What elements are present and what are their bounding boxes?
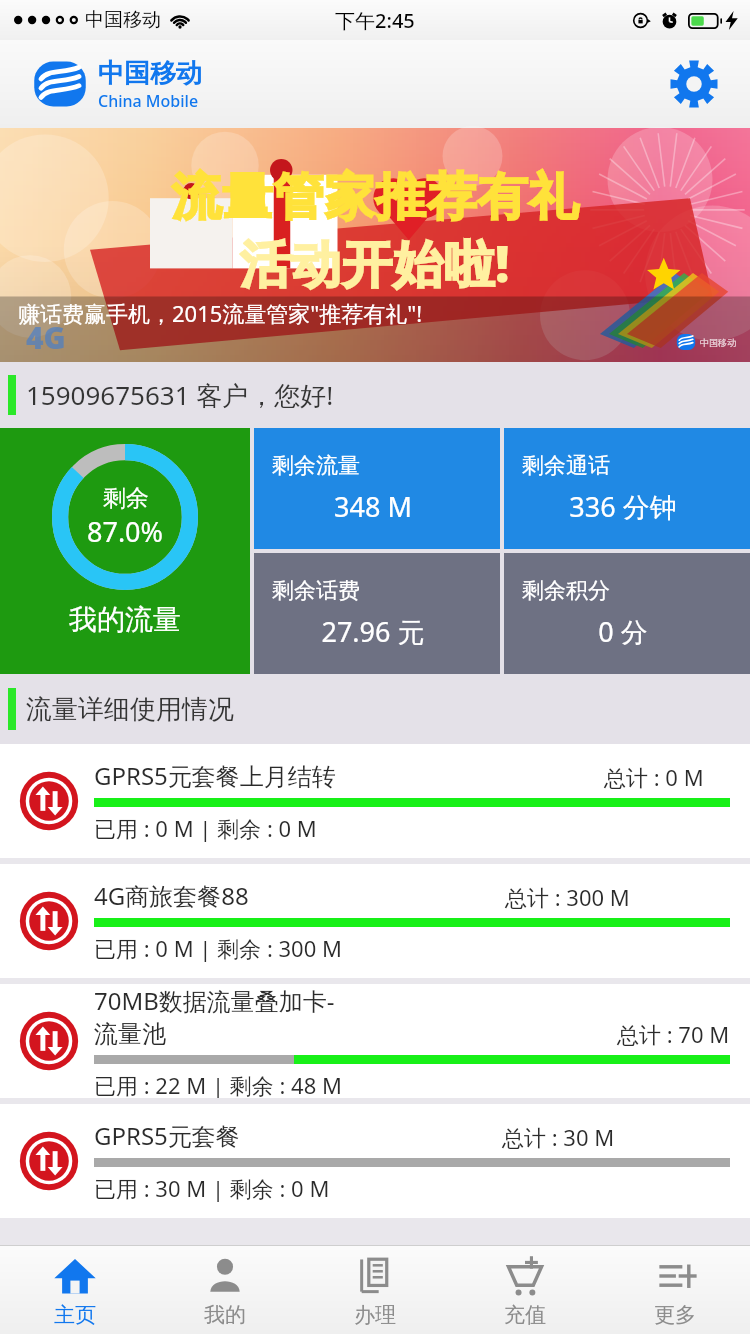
button[interactable]: 70MB数据流量叠加卡-流量池	[0, 984, 750, 1098]
button[interactable]: 剩余	[0, 428, 250, 674]
button[interactable]: 更多	[600, 1246, 750, 1334]
staticText: 70MB数据流量叠加卡-流量池	[94, 984, 355, 1049]
button[interactable]: GPRS5元套餐	[0, 1104, 750, 1218]
staticText: 0 分	[522, 613, 724, 650]
staticText: 更多	[654, 1302, 696, 1328]
staticText: 15909675631 客户，您好!	[26, 377, 334, 413]
staticText: China Mobile	[98, 90, 199, 112]
staticText: 总计 : 300 M	[505, 882, 630, 912]
staticText: GPRS5元套餐	[94, 1119, 240, 1152]
button[interactable]: 主页	[0, 1246, 150, 1334]
staticText: 已用 : 0 M | 剩余 : 300 M	[94, 933, 342, 963]
staticText: 剩余积分	[522, 577, 610, 605]
button[interactable]: 剩余通话	[504, 428, 750, 549]
staticText: 我的流量	[69, 602, 181, 637]
button[interactable]: 中国移动	[32, 56, 202, 112]
staticText: 348 M	[272, 488, 474, 525]
button[interactable]: Settings	[666, 56, 722, 112]
staticText: 87.0%	[87, 513, 164, 550]
button[interactable]: 办理	[300, 1246, 450, 1334]
button[interactable]: 充值	[450, 1246, 600, 1334]
staticText: 已用 : 30 M | 剩余 : 0 M	[94, 1173, 330, 1203]
staticText: 主页	[54, 1302, 96, 1328]
staticText: 中国移动	[85, 8, 161, 32]
button[interactable]: Promotion banner	[0, 128, 750, 362]
button[interactable]: 剩余积分	[504, 553, 750, 674]
staticText: 27.96 元	[272, 613, 474, 650]
staticText: 办理	[354, 1302, 396, 1328]
staticText: 336 分钟	[522, 488, 724, 525]
staticText: GPRS5元套餐上月结转	[94, 759, 336, 792]
staticText: 剩余	[103, 484, 149, 513]
staticText: 已用 : 0 M | 剩余 : 0 M	[94, 813, 317, 843]
staticText: 总计 : 0 M	[604, 762, 704, 792]
staticText: 中国移动	[700, 337, 736, 348]
staticText: 4G商旅套餐88	[94, 879, 249, 912]
staticText: 中国移动	[98, 57, 202, 90]
staticText: 剩余流量	[272, 452, 360, 480]
staticText: 流量管家推荐有礼	[171, 166, 579, 229]
staticText: 总计 : 70 M	[617, 1019, 730, 1049]
staticText: 下午2:45	[335, 7, 415, 34]
button[interactable]: GPRS5元套餐上月结转	[0, 744, 750, 858]
staticText: 赚话费赢手机，2015流量管家"推荐有礼"!	[18, 298, 423, 328]
staticText: 已用 : 22 M | 剩余 : 48 M	[94, 1070, 342, 1098]
button[interactable]: 4G商旅套餐88	[0, 864, 750, 978]
button[interactable]: 剩余话费	[254, 553, 500, 674]
staticText: 剩余话费	[272, 577, 360, 605]
button[interactable]: 我的	[150, 1246, 300, 1334]
staticText: 剩余通话	[522, 452, 610, 480]
staticText: 活动开始啦!	[240, 229, 511, 297]
button[interactable]: 剩余流量	[254, 428, 500, 549]
staticText: 4G	[26, 317, 66, 358]
staticText: 充值	[504, 1302, 546, 1328]
staticText: 我的	[204, 1302, 246, 1328]
staticText: 流量详细使用情况	[26, 693, 234, 726]
staticText: 总计 : 30 M	[502, 1122, 615, 1152]
